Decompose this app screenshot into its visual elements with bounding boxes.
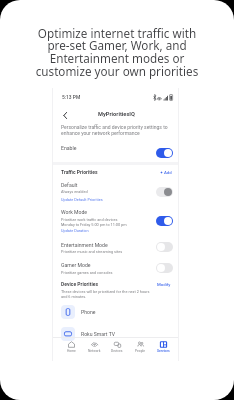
staticText: Gamer Mode [61,262,91,268]
staticText: Add [164,170,172,175]
staticText: Update Default Priorities [61,197,103,202]
staticText: Traffic Priorities [61,169,98,175]
button[interactable]: Services [152,341,174,355]
button[interactable] [156,216,173,226]
button[interactable]: Devices [106,341,128,355]
staticText: Phone [81,309,96,315]
button[interactable] [156,187,173,197]
staticText: Always enabled [61,189,88,194]
staticText: Device Priorities [61,281,98,287]
staticText: Update Duration [61,228,89,233]
button[interactable]: Network [83,341,105,355]
staticText: Prioritize music and streaming sites [61,249,123,254]
staticText: Modify [157,282,171,287]
staticText: MyPrioritiesIQ [98,111,135,118]
staticText: These devices will be prioritized for th… [61,289,150,299]
staticText: Network [88,349,101,353]
button[interactable] [156,263,173,273]
staticText: Prioritize games and consoles [61,270,113,275]
button[interactable] [156,242,173,252]
staticText: Services [157,349,170,353]
staticText: People [135,349,146,353]
staticText: Devices [111,349,123,353]
button[interactable]: Add [160,169,172,176]
button[interactable]: Phone [61,305,173,319]
staticText: Personalize traffic and device priority … [61,124,168,136]
staticText: Optimize internet traffic with pre-set G… [0,25,234,80]
button[interactable]: Roku Smart TV [61,327,173,341]
button[interactable]: Back [59,109,71,121]
staticText: 5:13 PM [62,94,81,100]
staticText: Prioritize work traffic and devices Mond… [61,217,127,227]
button[interactable] [156,148,173,158]
button[interactable]: People [129,341,151,355]
staticText: Home [67,349,76,353]
staticText: Default [61,182,78,188]
staticText: Enable [61,145,77,151]
button[interactable]: Home [60,341,82,355]
staticText: Work Mode [61,209,88,215]
staticText: Roku Smart TV [81,331,115,337]
staticText: Entertainment Mode [61,242,108,248]
